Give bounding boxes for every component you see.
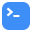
button[interactable]: Terminal — [0, 0, 32, 32]
